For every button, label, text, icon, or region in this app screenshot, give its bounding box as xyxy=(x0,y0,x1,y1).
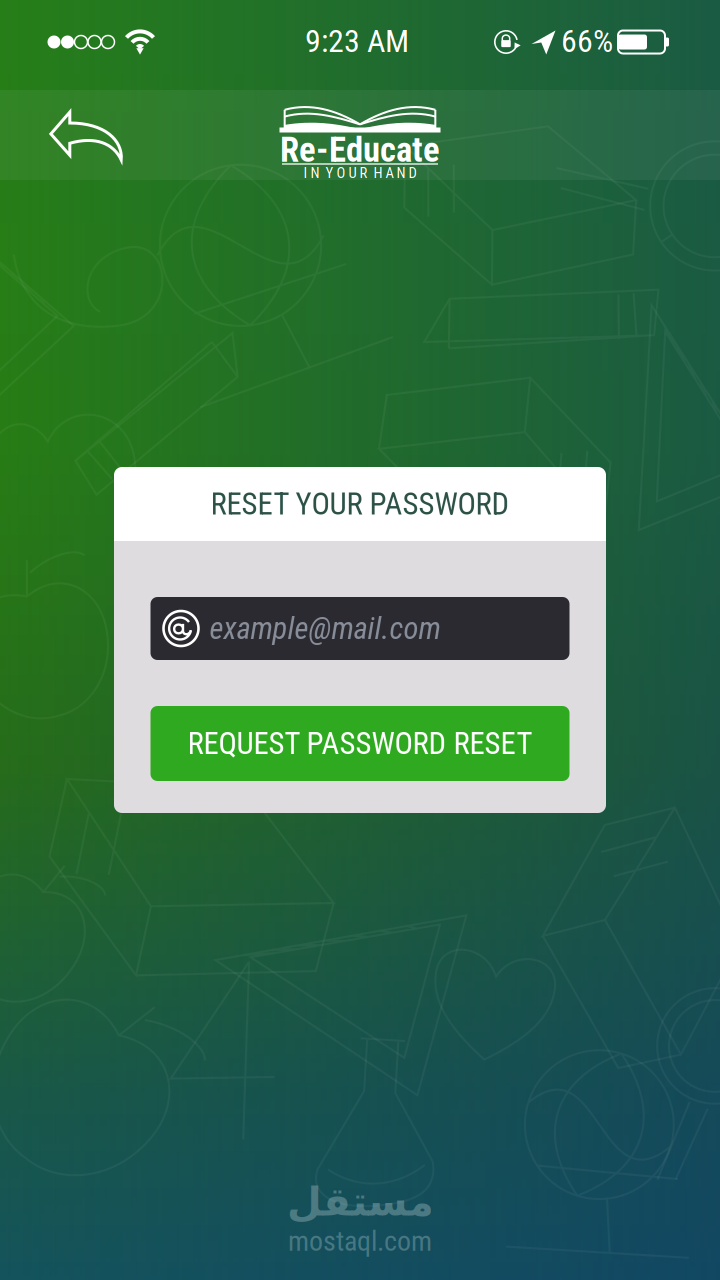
staticText: I N Y O U R H A N D xyxy=(303,164,416,182)
button[interactable]: Back xyxy=(34,94,138,178)
staticText: مستقل xyxy=(286,1178,433,1225)
staticText: Re-Educate xyxy=(280,130,440,170)
staticText: RESET YOUR PASSWORD xyxy=(210,486,509,522)
staticText: mostaql.com xyxy=(288,1225,432,1258)
button[interactable]: REQUEST PASSWORD RESET xyxy=(150,706,569,781)
staticText: REQUEST PASSWORD RESET xyxy=(187,725,532,761)
staticText: 66% xyxy=(561,22,613,60)
staticText: example@mail.com xyxy=(209,610,440,646)
staticText: 9:23 AM xyxy=(305,22,409,60)
